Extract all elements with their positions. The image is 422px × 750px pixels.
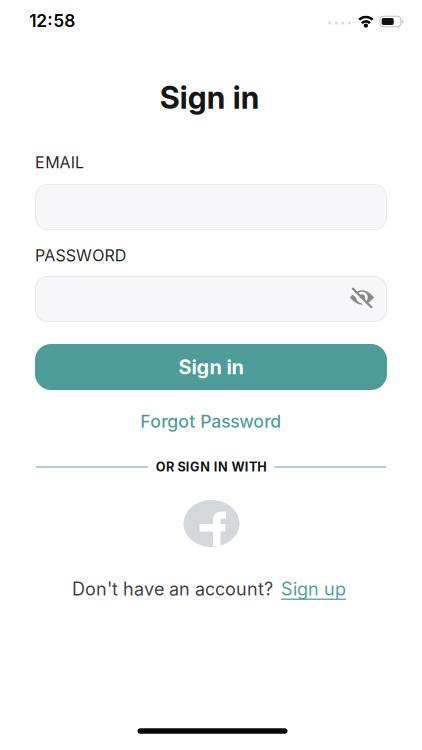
staticText: Sign in [178, 355, 243, 379]
staticText: Sign up [281, 578, 346, 600]
button[interactable]: Sign in [35, 344, 387, 390]
staticText: PASSWORD [35, 246, 127, 265]
staticText: Forgot Password [140, 411, 281, 432]
staticText: Sign in [160, 79, 260, 116]
staticText: EMAIL [35, 153, 84, 172]
button[interactable]: Sign up [281, 578, 346, 600]
button[interactable]: Show password [343, 276, 387, 322]
button[interactable]: Sign in with Facebook [183, 500, 239, 547]
staticText: Don't have an account? [72, 578, 273, 600]
staticText: OR SIGN IN WITH [156, 459, 266, 475]
button[interactable]: Forgot Password [132, 407, 289, 436]
staticText: 12:58 [29, 10, 75, 31]
